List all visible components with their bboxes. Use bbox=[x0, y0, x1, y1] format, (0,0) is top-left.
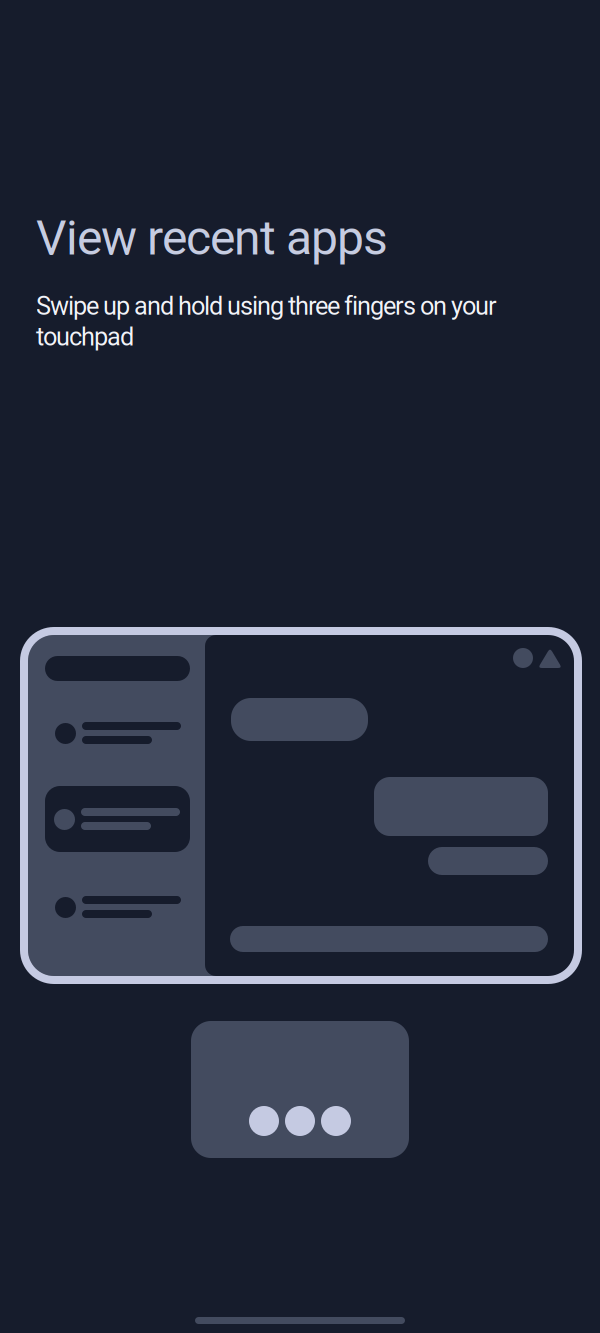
staticText: View recent apps bbox=[36, 210, 388, 266]
staticText: Swipe up and hold using three fingers on… bbox=[36, 291, 497, 352]
